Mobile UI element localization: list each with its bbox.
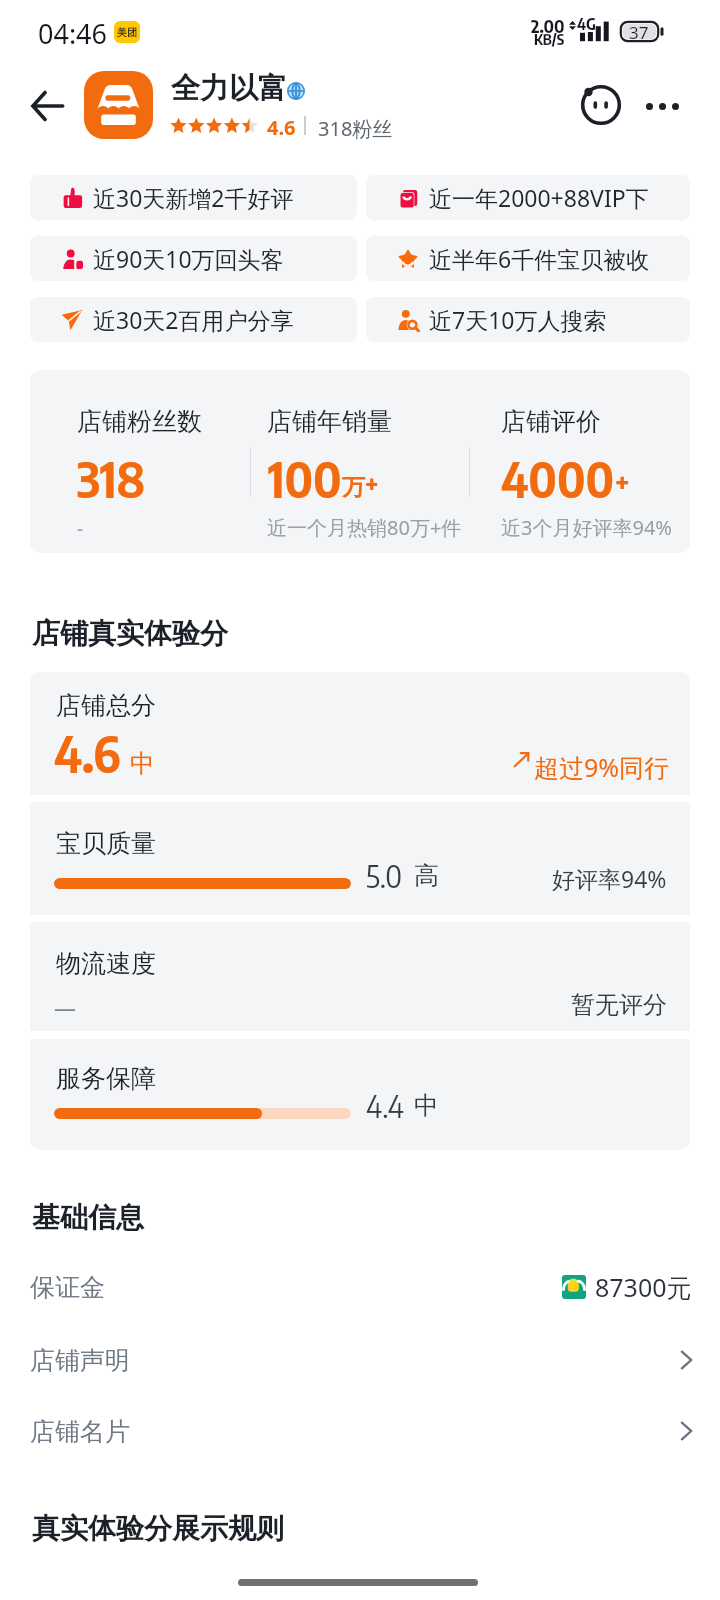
staticText: 近7天10万人搜索	[429, 304, 607, 335]
staticText: 店铺粉丝数	[77, 406, 202, 437]
staticText: 店铺评价	[501, 406, 601, 437]
button[interactable]	[30, 922, 690, 1031]
staticText: 好评率94%	[552, 863, 667, 894]
staticText: 店铺总分	[56, 690, 156, 721]
button[interactable]: 近30天2百用户分享	[30, 297, 357, 342]
staticText: 2.00	[531, 14, 565, 36]
staticText: 4.6	[54, 721, 121, 784]
staticText: 店铺声明	[30, 1345, 130, 1376]
staticText: +	[365, 468, 379, 500]
staticText: 100	[268, 448, 342, 509]
staticText: 暂无评分	[571, 990, 667, 1020]
staticText: 高	[414, 860, 439, 891]
button[interactable]: Shop logo	[84, 71, 153, 139]
staticText: KB/S	[534, 30, 565, 49]
button[interactable]: 店铺名片	[30, 1396, 692, 1466]
button[interactable]: Customer service	[576, 80, 626, 130]
button[interactable]: 店铺声明	[30, 1325, 692, 1395]
staticText: 近一个月热销80万+件	[267, 514, 462, 541]
staticText: 超过9%同行	[534, 750, 670, 784]
staticText: 318粉丝	[318, 115, 393, 142]
staticText: 5.0	[366, 856, 403, 895]
staticText: 近一年2000+88VIP下	[429, 182, 649, 213]
staticText: 4.6	[267, 114, 296, 141]
button[interactable]: 近一年2000+88VIP下	[366, 175, 690, 220]
staticText: 近30天2百用户分享	[93, 304, 294, 335]
button[interactable]: More options	[637, 81, 687, 131]
staticText: 店铺真实体验分	[32, 616, 228, 651]
staticText: +	[615, 465, 630, 500]
button[interactable]: Back	[18, 77, 76, 135]
staticText: 中	[414, 1090, 439, 1121]
staticText: 4G	[577, 14, 596, 34]
button[interactable]: 近半年6千件宝贝被收	[366, 236, 690, 281]
staticText: 基础信息	[32, 1200, 144, 1235]
staticText: 4000	[501, 448, 615, 509]
button[interactable]: 近30天新增2千好评	[30, 175, 357, 220]
staticText: 04:46	[38, 15, 108, 52]
staticText: 近90天10万回头客	[93, 243, 284, 274]
button[interactable]: 保证金	[30, 1252, 692, 1322]
staticText: 4.4	[366, 1086, 404, 1125]
staticText: 服务保障	[56, 1063, 156, 1094]
staticText: 保证金	[30, 1272, 105, 1303]
staticText: 中	[130, 748, 155, 779]
staticText: 宝贝质量	[56, 828, 156, 859]
button[interactable]	[30, 802, 690, 915]
button[interactable]: 近90天10万回头客	[30, 236, 357, 281]
staticText: 店铺年销量	[267, 406, 392, 437]
staticText: 店铺名片	[30, 1416, 130, 1447]
button[interactable]: 近7天10万人搜索	[366, 297, 690, 342]
staticText: 美团	[117, 26, 137, 39]
button[interactable]	[30, 672, 690, 795]
staticText: 37	[629, 21, 649, 42]
staticText: 近半年6千件宝贝被收	[429, 243, 650, 274]
staticText: 87300元	[595, 1270, 692, 1304]
staticText: 近3个月好评率94%	[501, 514, 672, 541]
button[interactable]	[30, 1039, 690, 1150]
staticText: 万	[342, 473, 365, 502]
staticText: -	[77, 516, 84, 542]
staticText: 物流速度	[56, 948, 156, 979]
staticText: 真实体验分展示规则	[32, 1511, 284, 1546]
staticText: —	[54, 992, 77, 1022]
staticText: 近30天新增2千好评	[93, 182, 294, 213]
staticText: 318	[77, 448, 146, 509]
staticText: 全力以富	[171, 70, 287, 107]
